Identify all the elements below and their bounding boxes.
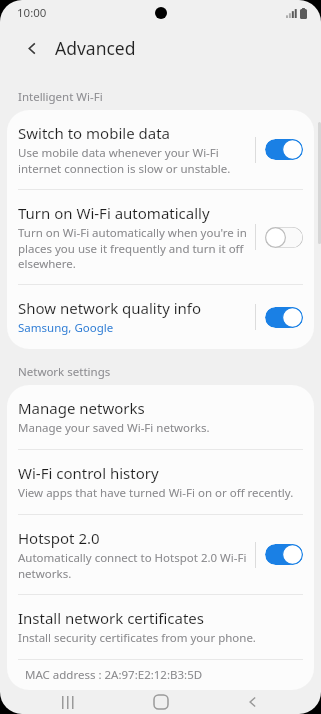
staticText: Switch to mobile data — [18, 123, 170, 143]
button[interactable]: Wi-Fi control history — [7, 450, 314, 514]
button[interactable]: Home — [136, 690, 186, 714]
staticText: Intelligent Wi-Fi — [18, 89, 103, 105]
staticText: Advanced — [55, 36, 136, 60]
staticText: Show network quality info — [18, 298, 202, 318]
button[interactable]: Show network quality info — [7, 285, 314, 349]
staticText: Turn on Wi-Fi automatically when you're … — [18, 225, 247, 271]
button[interactable]: On — [265, 139, 303, 160]
staticText: Install network certificates — [18, 608, 204, 628]
staticText: Turn on Wi-Fi automatically — [18, 203, 210, 223]
staticText: Automatically connect to Hotspot 2.0 Wi-… — [18, 550, 247, 581]
staticText: MAC address : 2A:97:E2:12:B3:5D — [25, 667, 203, 683]
staticText: Hotspot 2.0 — [18, 528, 100, 548]
button[interactable]: Back — [228, 690, 278, 714]
staticText: View apps that have turned Wi-Fi on or o… — [18, 485, 294, 501]
staticText: Use mobile data whenever your Wi-Fi inte… — [18, 145, 231, 176]
button[interactable]: Hotspot 2.0 — [7, 515, 314, 594]
button[interactable]: Off — [265, 227, 303, 248]
staticText: Samsung, Google — [18, 320, 114, 336]
staticText: Wi-Fi control history — [18, 463, 159, 483]
staticText: Manage your saved Wi-Fi networks. — [18, 420, 210, 436]
button[interactable]: Install network certificates — [7, 595, 314, 659]
staticText: Manage networks — [18, 398, 145, 418]
button[interactable]: On — [265, 307, 303, 328]
staticText: Network settings — [18, 364, 111, 380]
button[interactable]: Recents — [43, 690, 93, 714]
button[interactable]: Turn on Wi-Fi automatically — [7, 190, 314, 284]
staticText: Install security certificates from your … — [18, 630, 256, 646]
button[interactable]: Switch to mobile data — [7, 110, 314, 189]
button[interactable]: On — [265, 544, 303, 565]
button[interactable]: Back — [17, 33, 47, 63]
button[interactable]: Manage networks — [7, 385, 314, 449]
staticText: 10:00 — [17, 5, 47, 21]
